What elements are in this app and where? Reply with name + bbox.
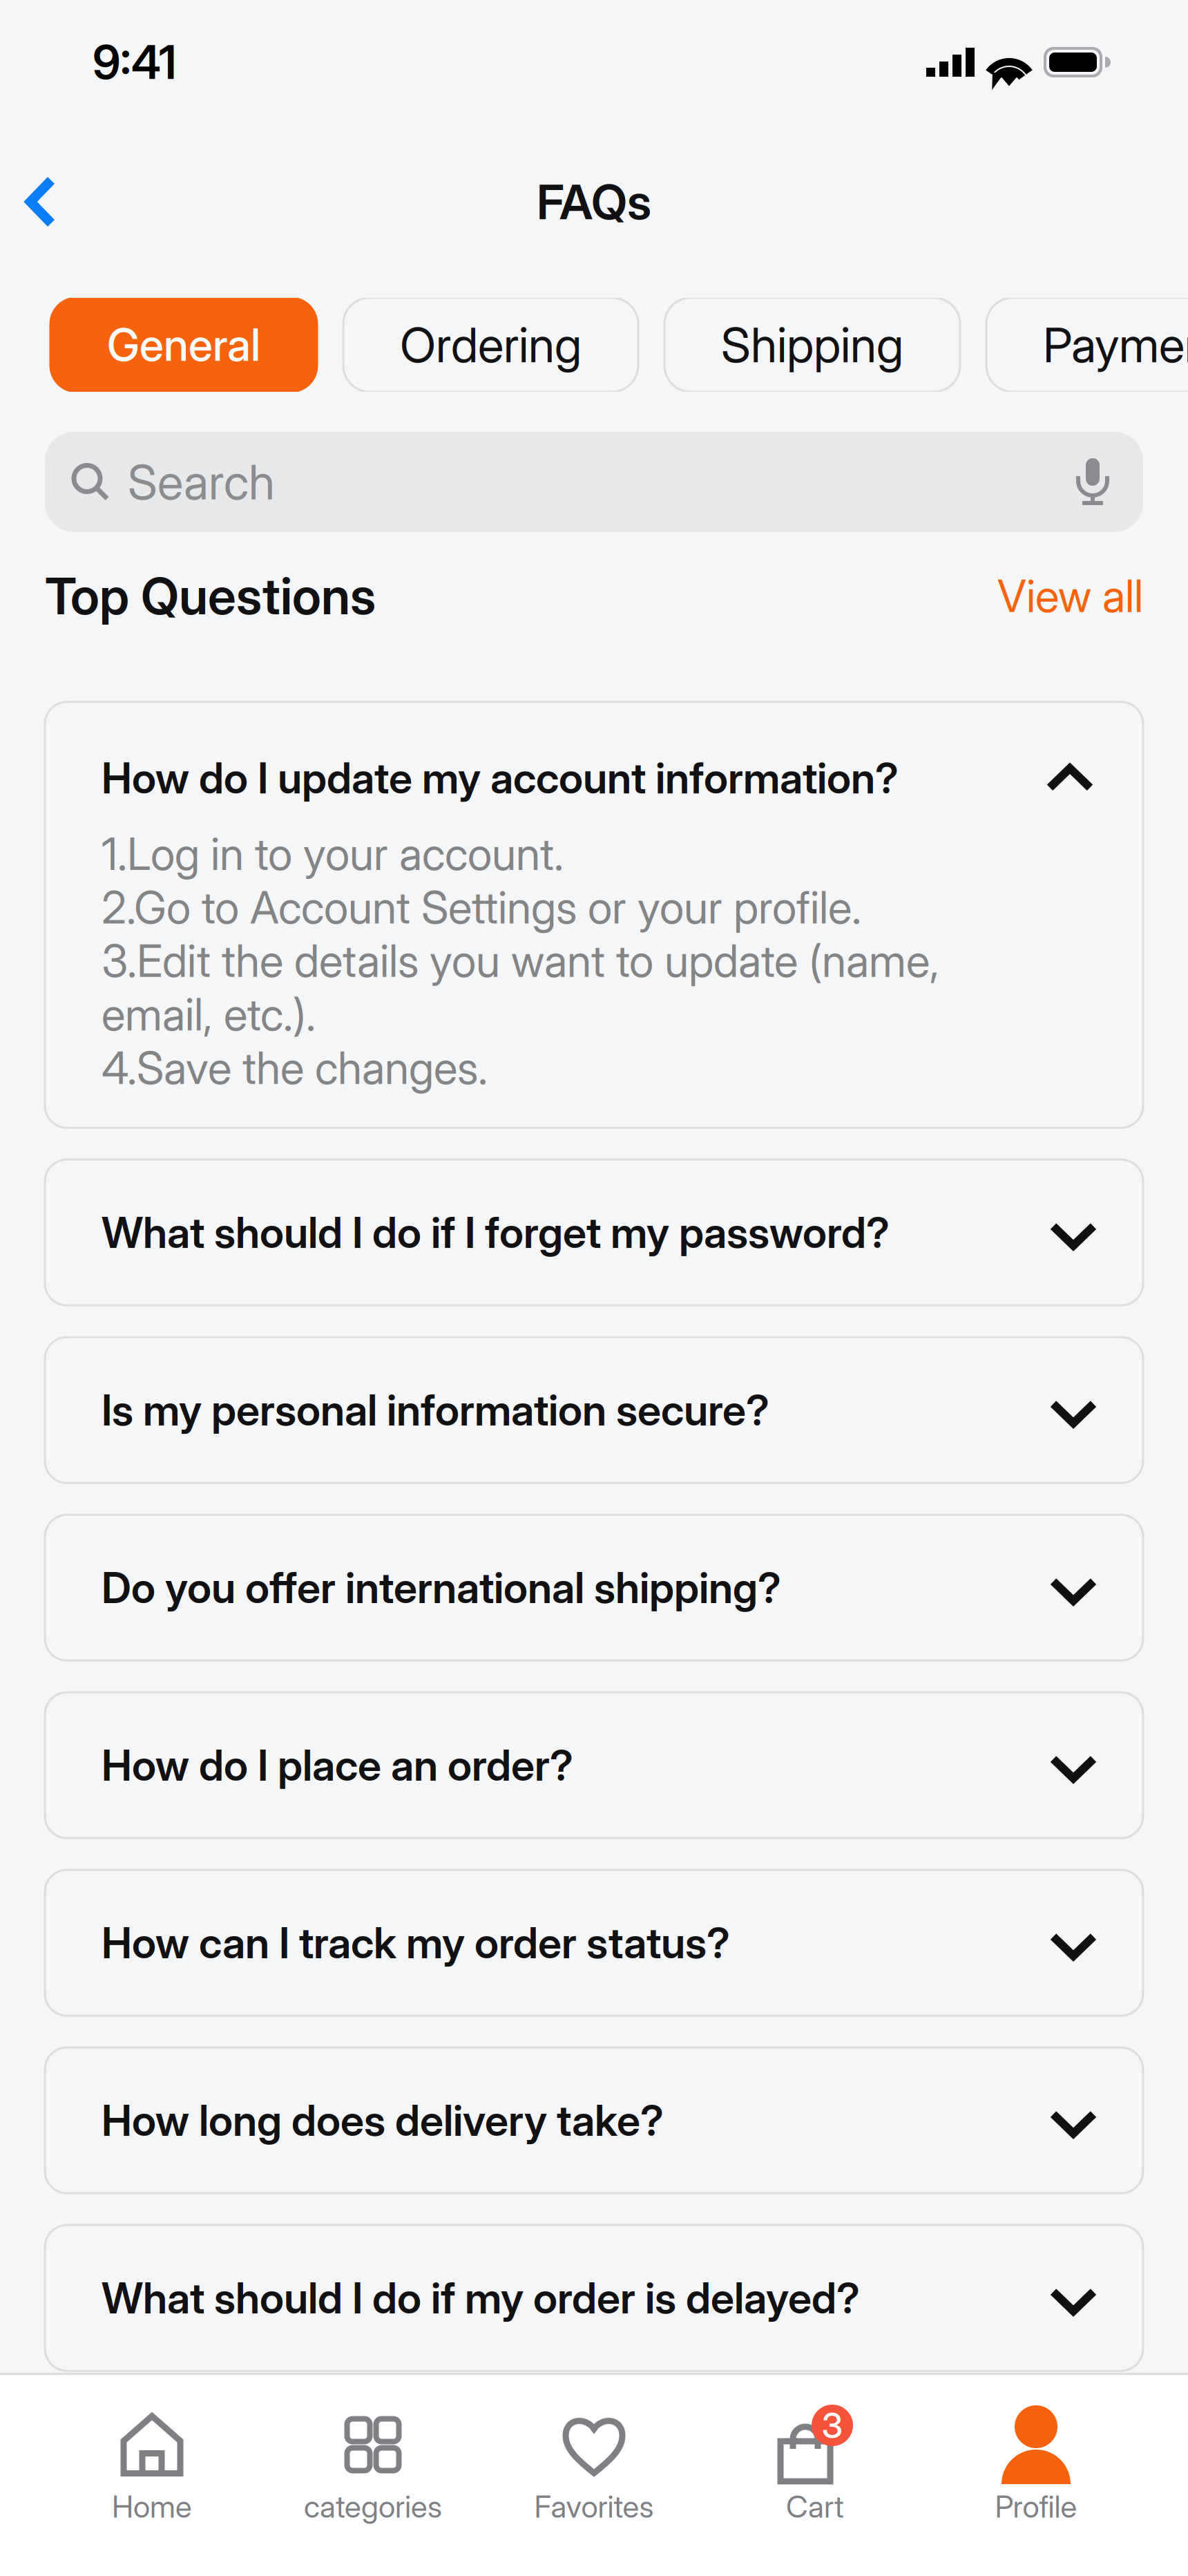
staticText: categories	[304, 2488, 442, 2525]
button[interactable]: categories	[262, 2373, 483, 2576]
staticText: Ordering	[400, 316, 582, 374]
button[interactable]: 3	[705, 2373, 926, 2576]
button[interactable]: Back	[10, 162, 71, 242]
button[interactable]: What should I do if my order is delayed?	[45, 2225, 1143, 2371]
button[interactable]: How long does delivery take?	[45, 2047, 1143, 2193]
staticText: 9:41	[93, 34, 176, 90]
button[interactable]: Profile	[926, 2373, 1147, 2576]
button[interactable]: How do I place an order?	[45, 1692, 1143, 1838]
staticText: General	[107, 318, 260, 372]
button[interactable]: Home	[41, 2373, 262, 2576]
button[interactable]: General	[50, 298, 317, 392]
button[interactable]: Favorites	[483, 2373, 705, 2576]
button[interactable]: Payment	[986, 298, 1188, 392]
staticText: Top Questions	[45, 565, 376, 627]
button[interactable]: Shipping	[664, 298, 960, 392]
staticText: How do I update my account information?	[102, 752, 899, 804]
staticText: Profile	[995, 2488, 1077, 2525]
staticText: Search	[128, 453, 275, 511]
button[interactable]: Ordering	[343, 298, 638, 392]
staticText: 1.Log in to your account. 2.Go to Accoun…	[102, 827, 939, 1095]
staticText: How do I place an order?	[102, 1740, 573, 1791]
staticText: Do you offer international shipping?	[102, 1562, 781, 1613]
button[interactable]: Do you offer international shipping?	[45, 1515, 1143, 1661]
staticText: Cart	[786, 2488, 844, 2525]
staticText: View all	[997, 569, 1143, 623]
staticText: Shipping	[721, 316, 903, 374]
staticText: How long does delivery take?	[102, 2095, 664, 2146]
staticText: 3	[822, 2404, 843, 2447]
button[interactable]: What should I do if I forget my password…	[45, 1160, 1143, 1305]
staticText: What should I do if I forget my password…	[102, 1207, 890, 1258]
button[interactable]: Is my personal information secure?	[45, 1337, 1143, 1483]
staticText: FAQs	[537, 173, 651, 231]
button[interactable]: How can I track my order status?	[45, 1870, 1143, 2016]
staticText: Favorites	[534, 2488, 654, 2525]
button[interactable]: View all	[997, 569, 1143, 623]
staticText: What should I do if my order is delayed?	[102, 2272, 860, 2324]
staticText: How can I track my order status?	[102, 1917, 730, 1968]
staticText: Is my personal information secure?	[102, 1384, 769, 1436]
staticText: Home	[112, 2488, 192, 2525]
staticText: Payment	[1043, 316, 1188, 374]
